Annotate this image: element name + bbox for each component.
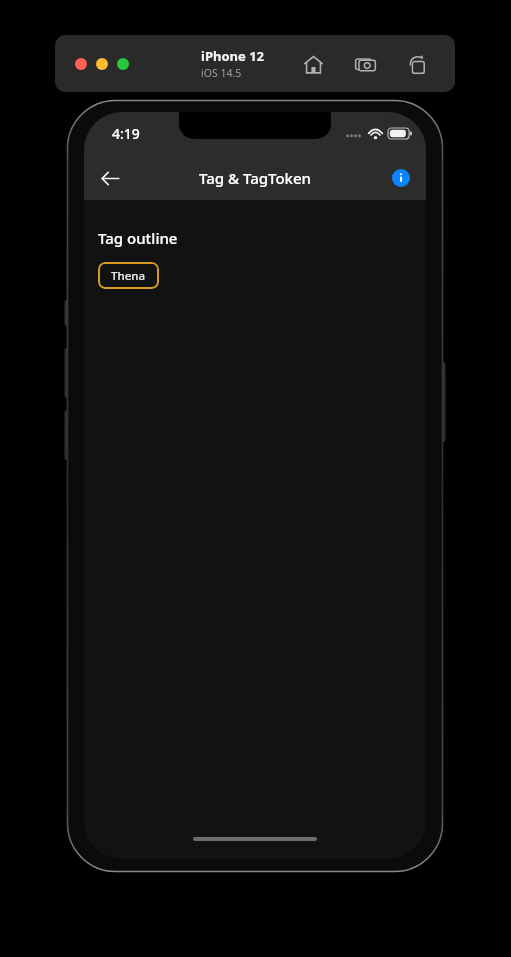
button[interactable]: Screenshot [352,51,378,77]
staticText: Thena [111,268,146,284]
button[interactable]: Thena [98,262,159,289]
button[interactable]: Close [75,58,87,70]
staticText: Tag & TagToken [199,168,312,188]
button[interactable]: Rotate [404,51,430,77]
staticText: 4:19 [112,124,140,143]
button[interactable]: Home [300,51,326,77]
button[interactable]: Minimize [96,58,108,70]
staticText: Tag outline [98,228,178,248]
button[interactable]: Zoom [117,58,129,70]
staticText: iOS 14.5 [201,66,242,80]
staticText: iPhone 12 [201,47,264,65]
button[interactable]: Info [386,163,416,193]
button[interactable]: Back [92,160,128,196]
